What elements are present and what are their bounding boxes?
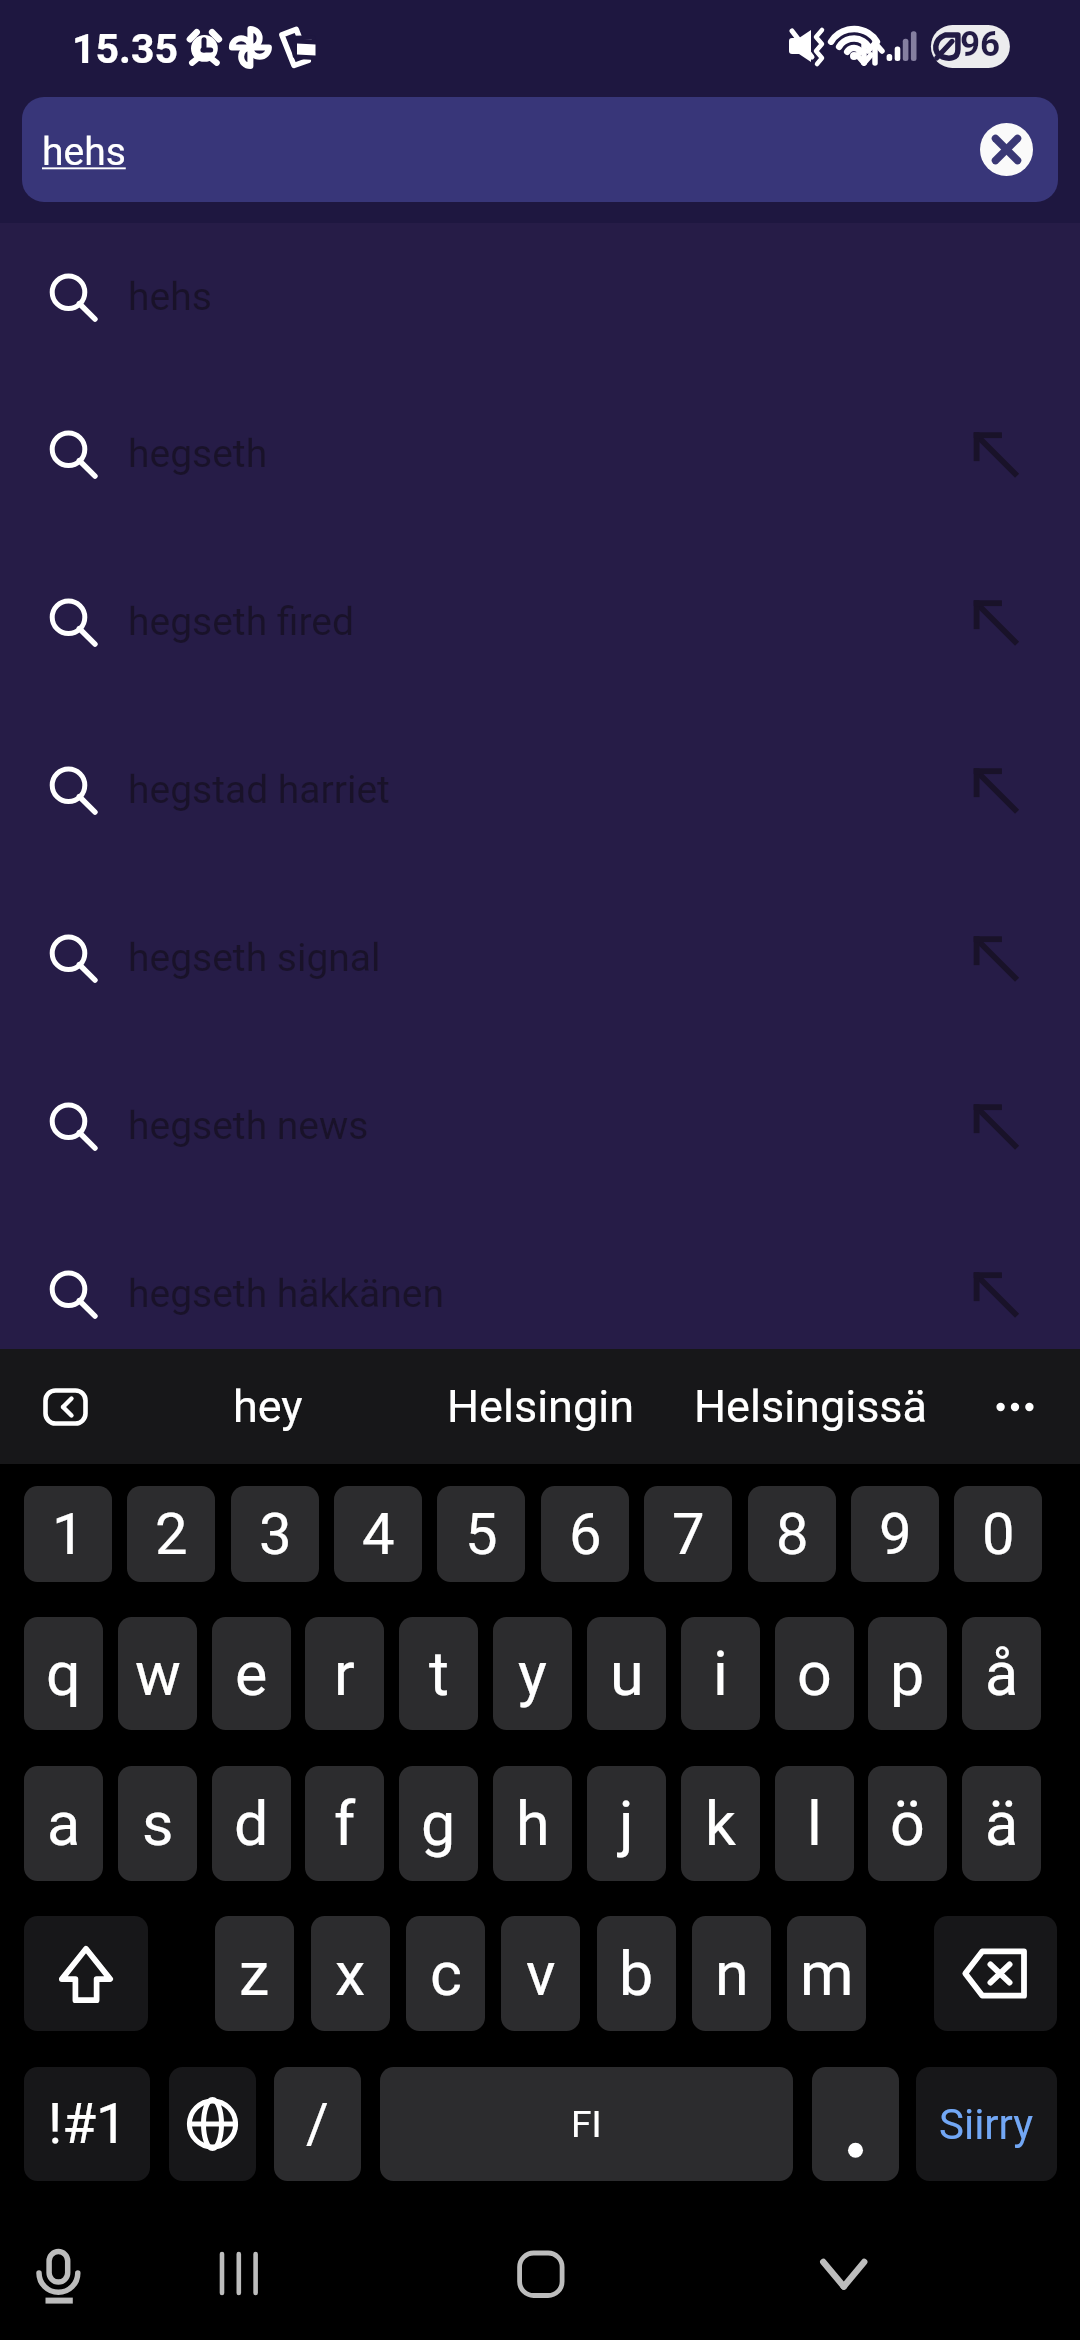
button[interactable]: g: [399, 1766, 478, 1881]
button[interactable]: 4: [334, 1486, 422, 1582]
staticText: 8: [776, 1500, 809, 1568]
button[interactable]: m: [787, 1916, 866, 2031]
button[interactable]: h: [493, 1766, 572, 1881]
button[interactable]: q: [24, 1617, 103, 1730]
staticText: k: [705, 1788, 736, 1859]
button[interactable]: Shift: [24, 1916, 148, 2031]
button[interactable]: hehs: [0, 223, 1080, 381]
button[interactable]: Change keyboard language: [169, 2067, 256, 2181]
staticText: s: [142, 1788, 174, 1859]
staticText: t: [429, 1638, 449, 1709]
staticText: 9: [879, 1500, 912, 1568]
button[interactable]: x: [311, 1916, 390, 2031]
button[interactable]: e: [212, 1617, 291, 1730]
button[interactable]: c: [406, 1916, 485, 2031]
staticText: Helsingissä: [694, 1380, 928, 1433]
button[interactable]: 5: [437, 1486, 525, 1582]
button[interactable]: hegseth news: [0, 1042, 1080, 1210]
button[interactable]: d: [212, 1766, 291, 1881]
button[interactable]: Previous suggestions: [43, 1388, 88, 1426]
button[interactable]: hegstad harriet: [0, 706, 1080, 874]
staticText: h: [516, 1788, 550, 1859]
button[interactable]: 8: [748, 1486, 836, 1582]
button[interactable]: hehs: [22, 97, 1058, 202]
staticText: hegseth fired: [128, 599, 354, 645]
button[interactable]: 7: [644, 1486, 732, 1582]
button[interactable]: Helsingin: [405, 1349, 675, 1464]
button[interactable]: hegseth: [0, 370, 1080, 538]
button[interactable]: r: [305, 1617, 384, 1730]
button[interactable]: !#1: [24, 2067, 150, 2181]
button[interactable]: 9: [851, 1486, 939, 1582]
button[interactable]: u: [587, 1617, 666, 1730]
staticText: 4: [362, 1500, 395, 1568]
button[interactable]: Period: [812, 2067, 899, 2181]
button[interactable]: ö: [868, 1766, 947, 1881]
button[interactable]: o: [775, 1617, 854, 1730]
staticText: 2: [155, 1500, 188, 1568]
staticText: hegseth news: [128, 1103, 369, 1149]
button[interactable]: Siirry: [916, 2067, 1057, 2181]
button[interactable]: hegseth signal: [0, 874, 1080, 1042]
button[interactable]: 3: [231, 1486, 319, 1582]
staticText: a: [47, 1788, 81, 1859]
button[interactable]: Backspace: [934, 1916, 1057, 2031]
staticText: e: [235, 1638, 268, 1709]
staticText: m: [800, 1938, 854, 2009]
staticText: 6: [569, 1500, 602, 1568]
staticText: q: [46, 1638, 81, 1709]
staticText: ö: [890, 1788, 925, 1859]
button[interactable]: hey: [133, 1349, 403, 1464]
button[interactable]: p: [868, 1617, 947, 1730]
staticText: 7: [672, 1500, 705, 1568]
button[interactable]: z: [215, 1916, 294, 2031]
staticText: n: [715, 1938, 749, 2009]
button[interactable]: hegseth häkkänen: [0, 1210, 1080, 1349]
button[interactable]: w: [118, 1617, 197, 1730]
button[interactable]: 0: [954, 1486, 1042, 1582]
button[interactable]: j: [587, 1766, 666, 1881]
staticText: l: [807, 1788, 822, 1859]
staticText: hegseth: [128, 431, 268, 477]
button[interactable]: n: [692, 1916, 771, 2031]
staticText: w: [135, 1638, 181, 1709]
button[interactable]: More suggestions: [975, 1377, 1055, 1437]
button[interactable]: Helsingissä: [676, 1349, 946, 1464]
button[interactable]: b: [597, 1916, 676, 2031]
staticText: 96: [960, 24, 1001, 65]
staticText: p: [890, 1638, 925, 1709]
staticText: hehs: [128, 274, 212, 320]
button[interactable]: Home: [300, 2240, 600, 2340]
button[interactable]: Recents: [120, 2240, 300, 2340]
button[interactable]: a: [24, 1766, 103, 1881]
staticText: 0: [982, 1500, 1015, 1568]
button[interactable]: hegseth fired: [0, 538, 1080, 706]
staticText: z: [239, 1938, 270, 2009]
staticText: 5: [465, 1500, 498, 1568]
staticText: g: [421, 1788, 456, 1859]
staticText: FI: [571, 2103, 602, 2146]
button[interactable]: i: [681, 1617, 760, 1730]
button[interactable]: 1: [24, 1486, 112, 1582]
button[interactable]: l: [775, 1766, 854, 1881]
staticText: 3: [259, 1500, 292, 1568]
button[interactable]: f: [305, 1766, 384, 1881]
button[interactable]: å: [962, 1617, 1041, 1730]
staticText: r: [334, 1638, 355, 1709]
button[interactable]: 2: [127, 1486, 215, 1582]
button[interactable]: k: [681, 1766, 760, 1881]
button[interactable]: 6: [541, 1486, 629, 1582]
staticText: å: [985, 1638, 1019, 1709]
button[interactable]: /: [274, 2067, 361, 2181]
button[interactable]: FI: [380, 2067, 793, 2181]
button[interactable]: Voice input: [0, 2240, 120, 2340]
button[interactable]: ä: [962, 1766, 1041, 1881]
button[interactable]: t: [399, 1617, 478, 1730]
staticText: 1: [52, 1500, 85, 1568]
button[interactable]: v: [501, 1916, 580, 2031]
staticText: Siirry: [939, 2100, 1034, 2149]
button[interactable]: y: [493, 1617, 572, 1730]
button[interactable]: s: [118, 1766, 197, 1881]
button[interactable]: Clear search: [980, 123, 1033, 176]
